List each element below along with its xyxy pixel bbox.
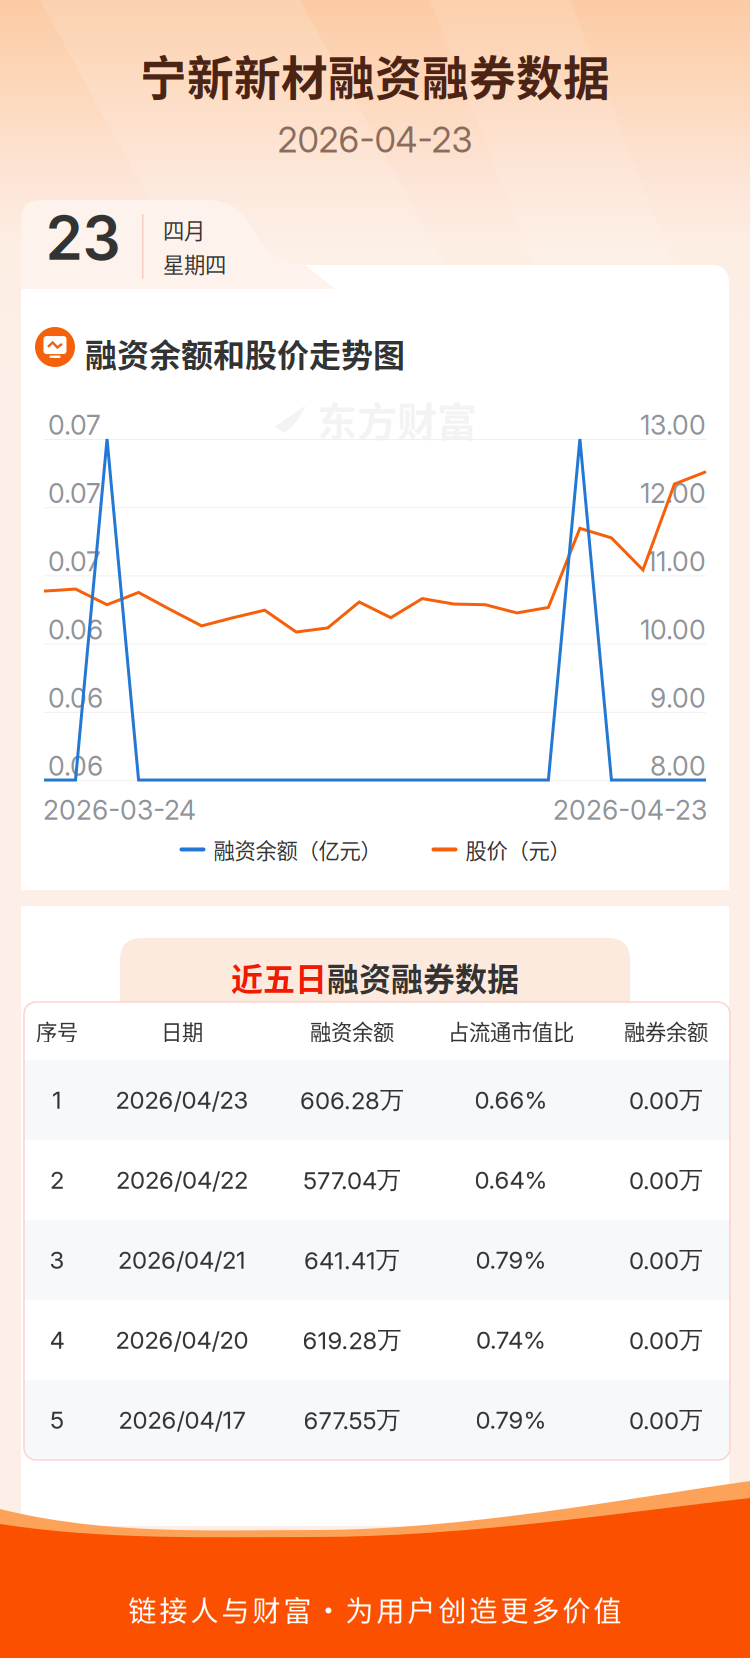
- staticText: 2026/04/21: [118, 1245, 246, 1274]
- staticText: 0.66%: [474, 1085, 547, 1114]
- staticText: 4: [49, 1325, 64, 1354]
- staticText: 2026/04/22: [116, 1165, 248, 1194]
- staticText: 链接人与财富·为用户创造更多价值: [128, 1589, 621, 1629]
- staticText: 10.00: [640, 614, 706, 646]
- staticText: 0.74%: [476, 1325, 546, 1354]
- staticText: 2026/04/23: [115, 1085, 248, 1114]
- staticText: 0.00万: [629, 1325, 703, 1355]
- staticText: 23: [45, 202, 120, 274]
- staticText: 13.00: [640, 409, 706, 441]
- staticText: 1: [52, 1085, 62, 1114]
- staticText: 0.00万: [629, 1165, 703, 1195]
- staticText: 四月: [163, 214, 205, 245]
- staticText: 3: [49, 1245, 64, 1274]
- staticText: 融资融券数据: [327, 954, 519, 1000]
- staticText: 0.79%: [475, 1405, 546, 1434]
- staticText: 融资余额和股价走势图: [85, 330, 405, 376]
- staticText: 11.00: [646, 545, 706, 578]
- staticText: 占流通市值比: [448, 1016, 574, 1046]
- staticText: 0.07: [48, 545, 101, 578]
- staticText: 619.28万: [302, 1325, 401, 1355]
- staticText: 日期: [161, 1016, 203, 1046]
- staticText: 0.07: [48, 409, 101, 441]
- staticText: 5: [50, 1405, 64, 1434]
- staticText: 融资余额（亿元）: [213, 834, 381, 865]
- staticText: 融券余额: [624, 1016, 708, 1046]
- staticText: 0.79%: [475, 1245, 546, 1274]
- staticText: 0.64%: [474, 1165, 547, 1194]
- staticText: 2: [50, 1165, 64, 1194]
- staticText: 0.06: [48, 682, 103, 714]
- staticText: 0.06: [48, 750, 103, 782]
- staticText: 2026/04/20: [115, 1325, 248, 1354]
- staticText: 2026/04/17: [118, 1405, 245, 1434]
- staticText: 577.04万: [303, 1165, 401, 1195]
- staticText: 641.41万: [304, 1245, 400, 1275]
- staticText: 股价（元）: [465, 834, 570, 865]
- staticText: 0.00万: [629, 1245, 703, 1275]
- staticText: 0.07: [48, 477, 101, 509]
- staticText: 2026-04-23: [553, 794, 707, 826]
- staticText: 宁新新材融资融券数据: [140, 41, 610, 109]
- staticText: 近五日: [231, 954, 327, 1000]
- staticText: 0.00万: [629, 1405, 703, 1435]
- staticText: 8.00: [650, 750, 706, 782]
- staticText: 606.28万: [300, 1085, 404, 1115]
- staticText: 0.00万: [629, 1085, 703, 1115]
- staticText: 融资余额: [310, 1016, 394, 1046]
- staticText: 12.00: [640, 477, 706, 509]
- staticText: 序号: [36, 1016, 78, 1046]
- staticText: 0.06: [48, 614, 103, 646]
- staticText: 东方财富: [317, 390, 477, 448]
- staticText: 677.55万: [303, 1405, 400, 1435]
- staticText: 9.00: [650, 682, 706, 714]
- staticText: 2026-04-23: [277, 119, 472, 161]
- staticText: 2026-03-24: [43, 794, 196, 826]
- staticText: 星期四: [163, 248, 226, 279]
